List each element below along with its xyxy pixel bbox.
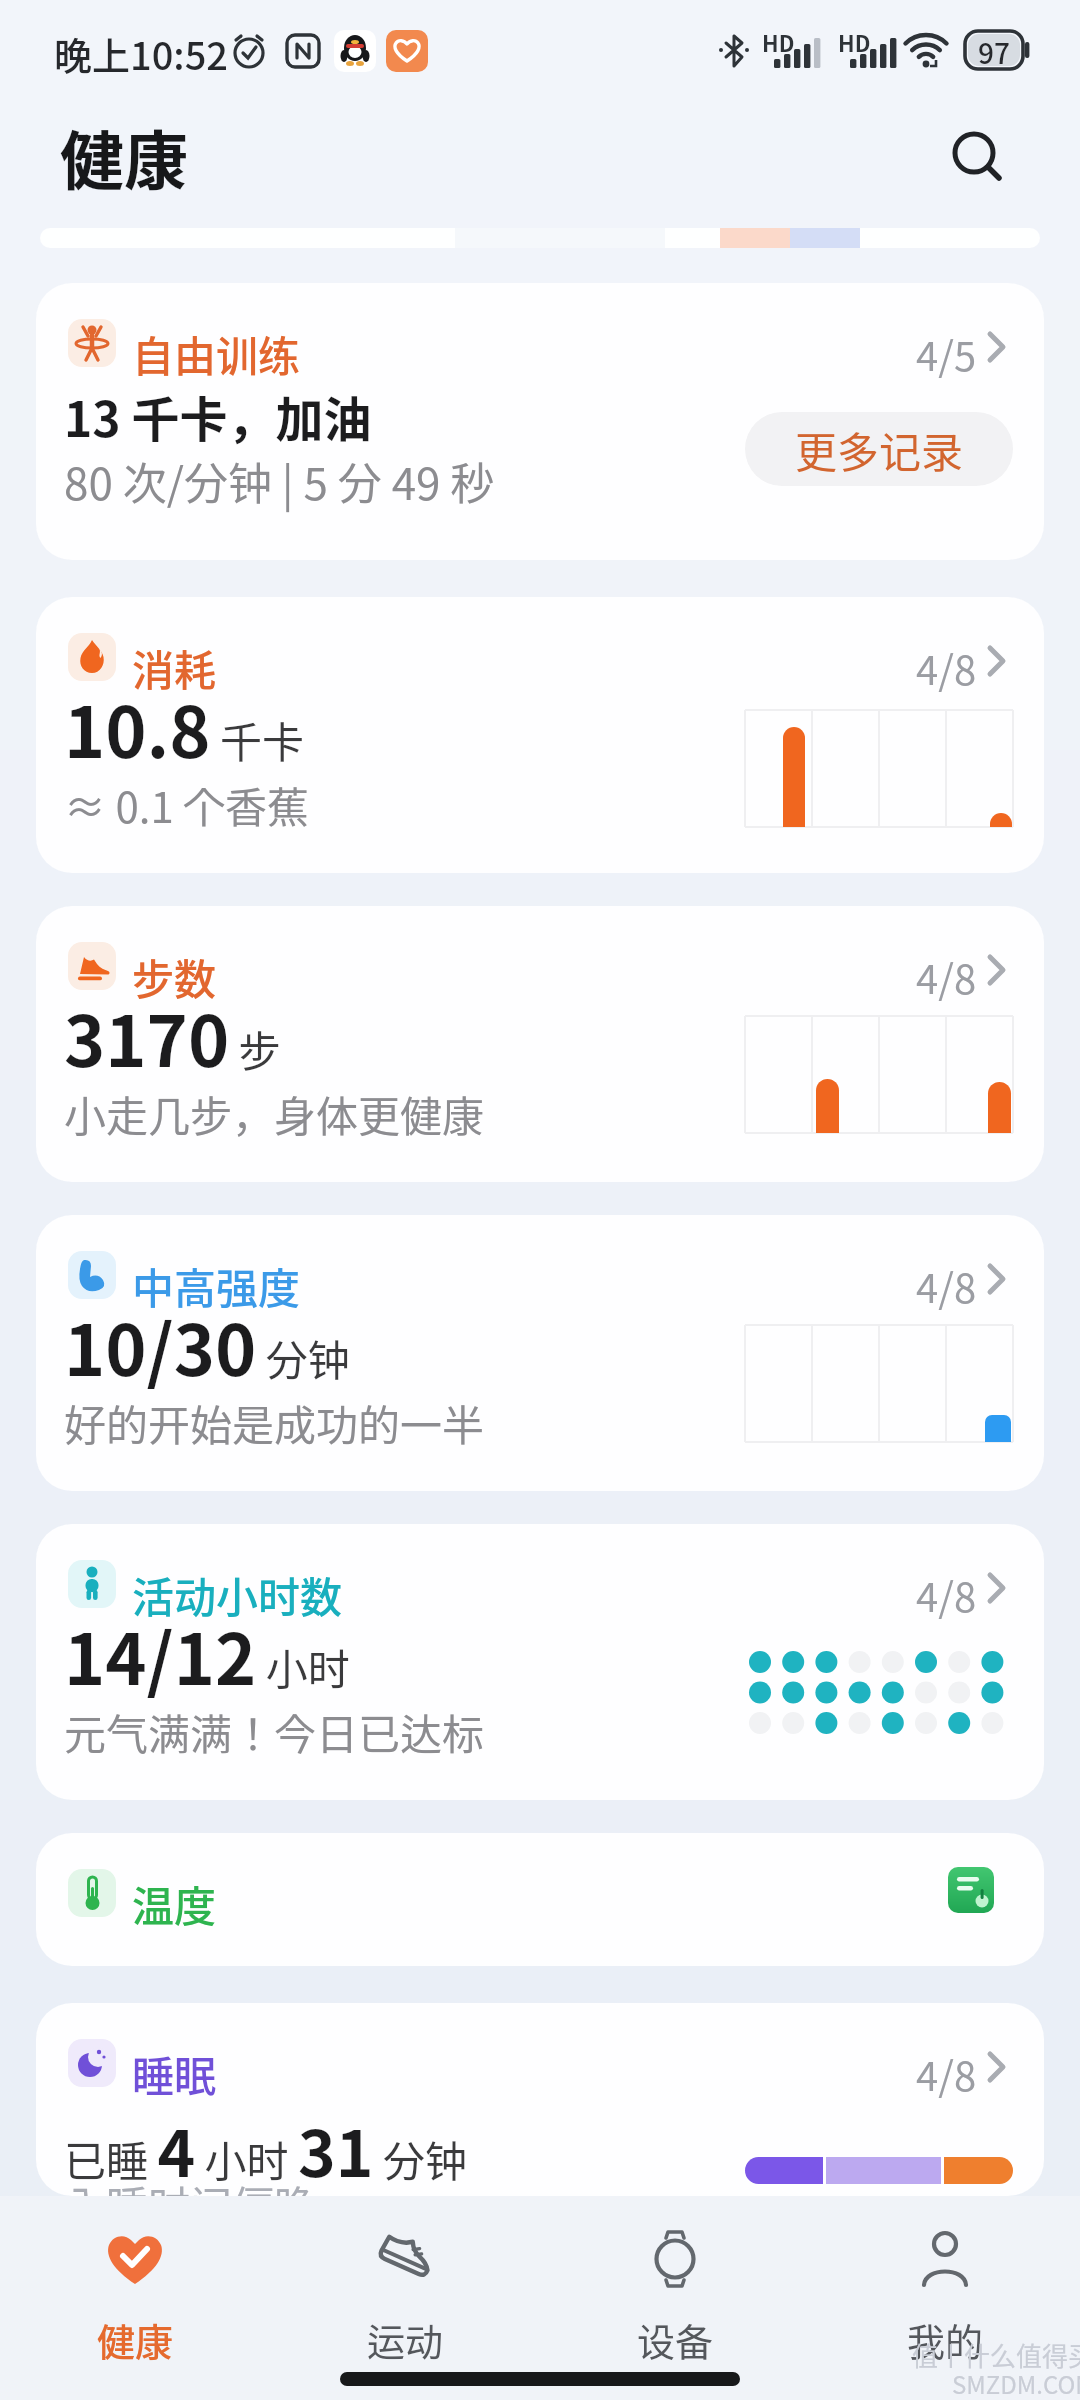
staticText: 好的开始是成功的一半 (64, 1392, 485, 1453)
staticText: 10/30 分钟 (64, 1295, 350, 1396)
button[interactable] (880, 2232, 1010, 2362)
staticText: 温度 (132, 1873, 217, 1934)
staticText: 4/5 (916, 325, 977, 383)
staticText: 4/8 (916, 1257, 977, 1315)
button[interactable]: 中高强度 (36, 1215, 1044, 1491)
staticText: 80 次/分钟 | 5 分 49 秒 (64, 449, 495, 513)
staticText: 晚上10:52 (54, 26, 228, 81)
button[interactable]: 步数 (36, 906, 1044, 1182)
staticText: 97 (978, 32, 1010, 73)
button[interactable] (340, 2232, 470, 2362)
staticText: 健康 (60, 110, 188, 203)
button[interactable] (610, 2232, 740, 2362)
staticText: 13 千卡，加油 (64, 381, 372, 451)
staticText: 入睡时间偏晚 (64, 2173, 317, 2196)
button[interactable]: 活动小时数 (36, 1524, 1044, 1800)
staticText: 步数 (132, 946, 217, 1007)
staticText: SMZDM.COM (952, 2366, 1080, 2400)
staticText: 14/12 小时 (64, 1604, 350, 1705)
button[interactable]: 更多记录 (745, 412, 1013, 486)
staticText: 4/8 (916, 1566, 977, 1624)
staticText: 4/8 (916, 948, 977, 1006)
staticText: 元气满满！今日已达标 (64, 1701, 485, 1762)
button[interactable]: 自由训练 (36, 283, 1044, 560)
staticText: 已睡 4 小时 31 分钟 (64, 2103, 467, 2196)
staticText: 健康 (97, 2312, 174, 2367)
staticText: 值丨什么值得买 (912, 2336, 1080, 2374)
staticText: 活动小时数 (132, 1564, 343, 1625)
button[interactable]: 温度 (36, 1833, 1044, 1966)
staticText: 4/8 (916, 639, 977, 697)
staticText: 消耗 (132, 637, 217, 698)
staticText: 小走几步，身体更健康 (64, 1083, 485, 1144)
button[interactable]: 消耗 (36, 597, 1044, 873)
staticText: ≈ 0.1 个香蕉 (64, 774, 310, 835)
button[interactable] (948, 128, 1008, 188)
staticText: 4/8 (916, 2045, 977, 2103)
button[interactable]: 睡眠 (36, 2003, 1044, 2196)
staticText: 睡眠 (132, 2043, 217, 2104)
button[interactable] (70, 2232, 200, 2362)
staticText: 我的 (907, 2312, 984, 2367)
staticText: HD (838, 26, 871, 58)
staticText: 运动 (367, 2312, 444, 2367)
staticText: 10.8 千卡 (64, 677, 305, 778)
staticText: 中高强度 (132, 1255, 301, 1316)
staticText: 自由训练 (132, 323, 301, 384)
staticText: HD (762, 26, 795, 58)
staticText: 更多记录 (795, 419, 964, 480)
staticText: 3170 步 (64, 986, 281, 1087)
staticText: 设备 (637, 2312, 714, 2367)
